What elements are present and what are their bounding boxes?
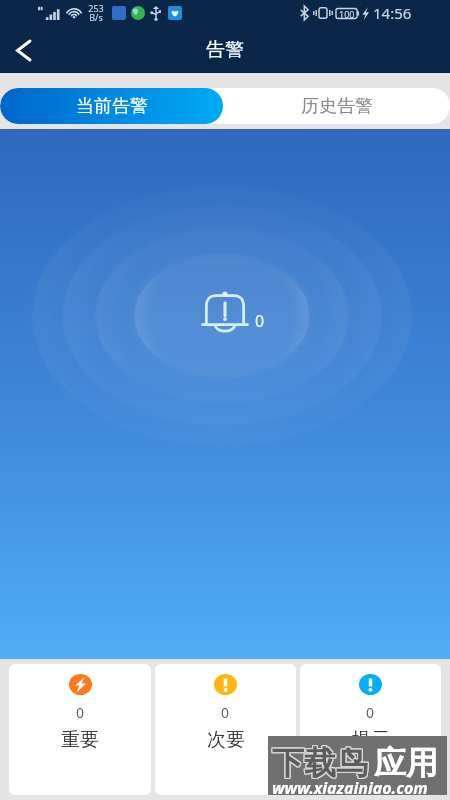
button[interactable]: Back bbox=[0, 27, 46, 73]
staticText: 0 bbox=[255, 310, 265, 332]
staticText: 下载鸟 bbox=[271, 744, 367, 784]
staticText: 下载鸟 bbox=[271, 743, 367, 783]
staticText: 下载鸟 bbox=[273, 744, 369, 784]
button[interactable]: 0 bbox=[155, 664, 296, 795]
staticText: 下载鸟 bbox=[273, 742, 369, 782]
staticText: www.xiazainiao.com bbox=[272, 777, 428, 799]
staticText: 0 bbox=[76, 703, 85, 722]
staticText: 下载鸟 bbox=[271, 742, 367, 782]
staticText: 当前告警 bbox=[76, 95, 148, 118]
staticText: 下载鸟 bbox=[272, 743, 368, 783]
staticText: 历史告警 bbox=[301, 95, 373, 118]
staticText: 次要 bbox=[207, 728, 245, 752]
button[interactable]: 0 bbox=[300, 664, 441, 795]
button[interactable]: 当前告警 bbox=[0, 88, 223, 124]
staticText: 0 bbox=[221, 703, 230, 722]
staticText: 100 bbox=[339, 8, 355, 20]
staticText: 下载鸟 bbox=[272, 744, 368, 784]
staticText: 0 bbox=[366, 703, 375, 722]
staticText: 下载鸟 bbox=[272, 742, 368, 782]
button[interactable]: 0 bbox=[9, 664, 151, 795]
staticText: 下载鸟 bbox=[273, 743, 369, 783]
staticText: 重要 bbox=[61, 728, 99, 752]
staticText: 告警 bbox=[206, 38, 244, 62]
staticText: 应用 bbox=[374, 743, 438, 783]
staticText: 253 B/s bbox=[88, 2, 104, 24]
staticText: 14:56 bbox=[373, 3, 412, 23]
staticText: 提示 bbox=[352, 728, 390, 752]
button[interactable]: 历史告警 bbox=[223, 88, 450, 124]
